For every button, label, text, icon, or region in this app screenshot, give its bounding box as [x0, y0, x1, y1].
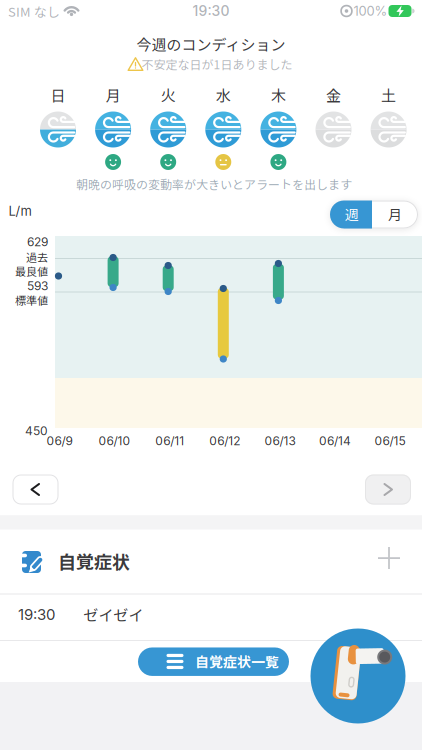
- button[interactable]: 呼吸の測定: [310, 628, 405, 723]
- staticText: 水: [216, 84, 231, 106]
- button[interactable]: 週: [0, 0, 422, 750]
- staticText: 06/12: [209, 434, 240, 448]
- staticText: 06/11: [155, 434, 184, 448]
- staticText: 月: [106, 84, 121, 106]
- staticText: 日: [50, 84, 65, 106]
- staticText: 06/13: [264, 434, 295, 448]
- staticText: 週: [345, 204, 359, 224]
- staticText: 19:30: [18, 605, 55, 623]
- staticText: 標準値: [15, 292, 48, 308]
- staticText: 450: [25, 424, 48, 438]
- staticText: 06/10: [99, 434, 131, 448]
- staticText: 過去: [26, 249, 48, 265]
- button[interactable]: 月: [0, 0, 422, 750]
- staticText: 土: [381, 84, 396, 106]
- staticText: 金: [326, 84, 341, 106]
- staticText: 月: [388, 204, 402, 224]
- staticText: SIM なし: [8, 2, 60, 20]
- button[interactable]: 追加: [0, 0, 422, 750]
- staticText: 自覚症状一覧: [195, 651, 279, 671]
- staticText: 不安定な日が1日ありました: [141, 55, 292, 73]
- button[interactable]: 前の週: [12, 474, 58, 504]
- button[interactable]: 19:30: [0, 595, 422, 640]
- staticText: 100%: [353, 3, 387, 19]
- staticText: 629: [27, 235, 48, 249]
- staticText: 火: [161, 84, 176, 106]
- staticText: 最良値: [15, 263, 48, 279]
- staticText: 今週のコンディション: [136, 33, 285, 55]
- staticText: 06/9: [46, 434, 72, 448]
- staticText: 593: [27, 279, 48, 293]
- staticText: 19:30: [192, 2, 229, 19]
- staticText: 06/15: [375, 434, 406, 448]
- staticText: 木: [271, 84, 286, 106]
- staticText: 自覚症状: [58, 548, 130, 574]
- button[interactable]: 次の週: [365, 474, 411, 504]
- staticText: L/m: [8, 203, 31, 219]
- staticText: 朝晩の呼吸の変動率が大きいとアラートを出します: [76, 175, 352, 193]
- button[interactable]: 自覚症状一覧: [138, 647, 289, 676]
- staticText: 06/14: [319, 434, 351, 448]
- staticText: ゼイゼイ: [83, 604, 143, 625]
